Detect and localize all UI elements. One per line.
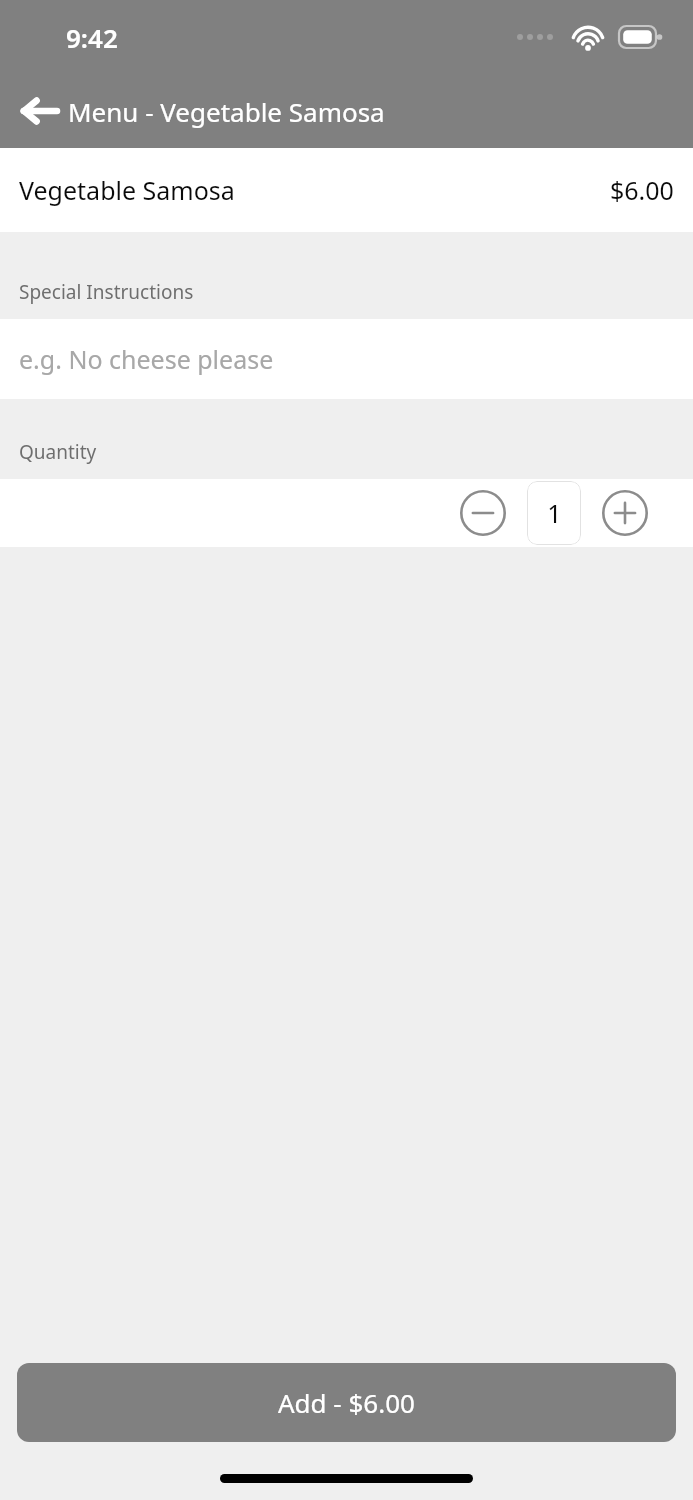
button[interactable]: Increase quantity — [599, 487, 651, 539]
button[interactable]: Decrease quantity — [457, 487, 509, 539]
staticText: 9:42 — [66, 20, 118, 55]
button[interactable]: Add - $6.00 — [17, 1363, 676, 1442]
staticText: Quantity — [19, 439, 97, 465]
staticText: Special Instructions — [19, 279, 194, 305]
button[interactable]: Back — [16, 87, 64, 135]
button[interactable]: Vegetable Samosa — [0, 148, 693, 232]
staticText: Menu - Vegetable Samosa — [68, 94, 385, 129]
staticText: Add - $6.00 — [278, 1385, 415, 1420]
button[interactable]: e.g. No cheese please — [0, 319, 693, 399]
staticText: 1 — [547, 496, 562, 530]
staticText: $6.00 — [610, 173, 674, 207]
button[interactable]: 1 — [527, 481, 581, 545]
staticText: Vegetable Samosa — [19, 173, 235, 207]
staticText: e.g. No cheese please — [19, 342, 274, 376]
